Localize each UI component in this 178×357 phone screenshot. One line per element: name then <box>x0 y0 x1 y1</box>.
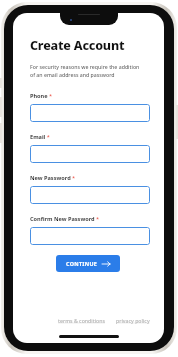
staticText: Phone * <box>30 92 53 100</box>
staticText: New Password * <box>30 174 76 182</box>
staticText: Email * <box>30 133 50 141</box>
staticText: privacy policy <box>116 317 150 324</box>
button[interactable]: CONTINUE <box>56 255 120 272</box>
button[interactable]: Confirm New Password <box>30 227 150 245</box>
button[interactable]: privacy policy <box>114 315 152 326</box>
button[interactable]: Email <box>30 145 150 163</box>
button[interactable]: terms & conditions <box>56 315 108 326</box>
staticText: For security reasons we require the addi… <box>30 63 140 79</box>
staticText: Confirm New Password * <box>30 215 100 223</box>
staticText: Create Account <box>30 37 125 54</box>
staticText: CONTINUE <box>66 260 98 267</box>
staticText: terms & conditions <box>58 317 106 324</box>
button[interactable]: Phone <box>30 104 150 122</box>
button[interactable]: New Password <box>30 186 150 204</box>
